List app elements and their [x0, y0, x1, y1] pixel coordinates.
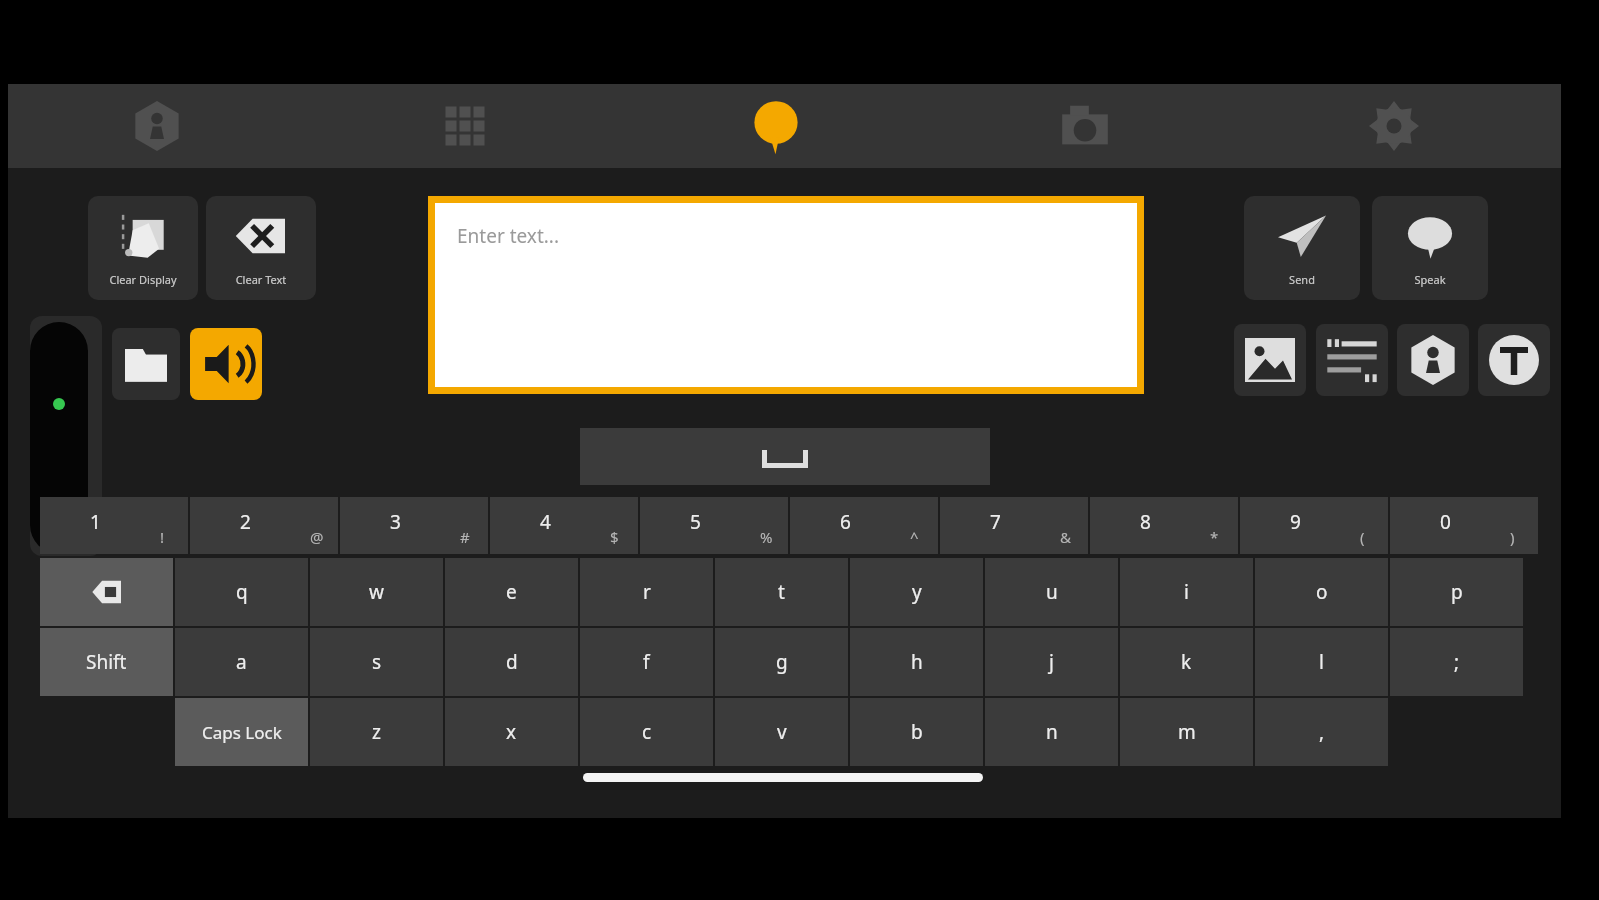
staticText: e	[506, 579, 517, 605]
button[interactable]: 8	[1090, 497, 1238, 554]
staticText: Clear Text	[206, 272, 316, 287]
button[interactable]: c	[580, 698, 713, 766]
button[interactable]: j	[985, 628, 1118, 696]
staticText: 2	[240, 509, 251, 535]
staticText: w	[369, 579, 384, 605]
button[interactable]: Backspace	[40, 558, 173, 626]
staticText: #	[460, 527, 470, 547]
staticText: v	[777, 719, 787, 745]
button[interactable]: 2	[190, 497, 338, 554]
button[interactable]: q	[175, 558, 308, 626]
staticText: a	[236, 649, 247, 675]
button[interactable]: s	[310, 628, 443, 696]
staticText: s	[372, 649, 382, 675]
staticText: 5	[690, 509, 701, 535]
button[interactable]: x	[445, 698, 578, 766]
button[interactable]: Sound	[190, 328, 262, 400]
staticText: l	[1319, 649, 1324, 675]
button[interactable]: Image	[1234, 324, 1306, 396]
button[interactable]: Touch pad	[30, 322, 88, 554]
staticText: y	[912, 579, 922, 605]
button[interactable]: l	[1255, 628, 1388, 696]
staticText: q	[236, 579, 248, 605]
staticText: c	[642, 719, 652, 745]
button[interactable]: ;	[1390, 628, 1523, 696]
button[interactable]: 4	[490, 497, 638, 554]
staticText: f	[643, 649, 650, 675]
button[interactable]: d	[445, 628, 578, 696]
staticText: $	[610, 527, 619, 547]
staticText: 0	[1440, 509, 1451, 535]
button[interactable]: Messages	[728, 84, 824, 168]
button[interactable]: Settings	[1346, 84, 1442, 168]
button[interactable]: w	[310, 558, 443, 626]
button[interactable]: h	[850, 628, 983, 696]
button[interactable]: 9	[1240, 497, 1388, 554]
staticText: Clear Display	[88, 272, 198, 287]
button[interactable]: Space	[580, 428, 990, 485]
button[interactable]: Shift	[40, 628, 173, 696]
button[interactable]: 6	[790, 497, 938, 554]
button[interactable]: o	[1255, 558, 1388, 626]
button[interactable]: Speak	[1372, 196, 1488, 300]
button[interactable]: Caps Lock	[175, 698, 308, 766]
staticText: Send	[1244, 272, 1360, 287]
staticText: g	[776, 649, 788, 675]
button[interactable]: Profile	[109, 84, 205, 168]
button[interactable]: b	[850, 698, 983, 766]
button[interactable]: n	[985, 698, 1118, 766]
button[interactable]: Text style	[1478, 324, 1550, 396]
staticText: Caps Lock	[202, 721, 282, 744]
button[interactable]: Avatar	[1397, 324, 1469, 396]
button[interactable]: f	[580, 628, 713, 696]
button[interactable]: 7	[940, 497, 1088, 554]
button[interactable]: Files	[112, 328, 180, 400]
staticText: 7	[990, 509, 1001, 535]
button[interactable]: i	[1120, 558, 1253, 626]
staticText: p	[1451, 579, 1463, 605]
button[interactable]: u	[985, 558, 1118, 626]
staticText: Speak	[1372, 272, 1488, 287]
staticText: o	[1316, 579, 1328, 605]
staticText: 6	[840, 509, 851, 535]
button[interactable]: Clear Text	[206, 196, 316, 300]
button[interactable]: 3	[340, 497, 488, 554]
staticText: 3	[390, 509, 401, 535]
button[interactable]: Grid	[417, 84, 513, 168]
button[interactable]: 5	[640, 497, 788, 554]
staticText: %	[760, 527, 773, 547]
staticText: t	[778, 579, 785, 605]
staticText: j	[1049, 649, 1054, 675]
button[interactable]: 1	[40, 497, 188, 554]
button[interactable]: m	[1120, 698, 1253, 766]
button[interactable]: 0	[1390, 497, 1538, 554]
button[interactable]: e	[445, 558, 578, 626]
staticText: 4	[540, 509, 551, 535]
button[interactable]: a	[175, 628, 308, 696]
staticText: Enter text...	[457, 223, 560, 249]
button[interactable]: Send	[1244, 196, 1360, 300]
button[interactable]: k	[1120, 628, 1253, 696]
button[interactable]: r	[580, 558, 713, 626]
staticText: 1	[90, 509, 101, 535]
button[interactable]: Camera	[1037, 84, 1133, 168]
button[interactable]: t	[715, 558, 848, 626]
button[interactable]: y	[850, 558, 983, 626]
staticText: 9	[1290, 509, 1301, 535]
staticText: b	[911, 719, 923, 745]
button[interactable]: Enter text...	[428, 196, 1144, 394]
staticText: ,	[1319, 719, 1325, 745]
staticText: n	[1046, 719, 1058, 745]
staticText: m	[1178, 719, 1196, 745]
button[interactable]: v	[715, 698, 848, 766]
button[interactable]: Quote	[1316, 324, 1388, 396]
staticText: r	[643, 579, 651, 605]
button[interactable]: Clear Display	[88, 196, 198, 300]
staticText: ^	[910, 527, 919, 547]
button[interactable]: ,	[1255, 698, 1388, 766]
staticText: *	[1210, 527, 1219, 547]
button[interactable]: z	[310, 698, 443, 766]
staticText: k	[1181, 649, 1192, 675]
button[interactable]: g	[715, 628, 848, 696]
button[interactable]: p	[1390, 558, 1523, 626]
